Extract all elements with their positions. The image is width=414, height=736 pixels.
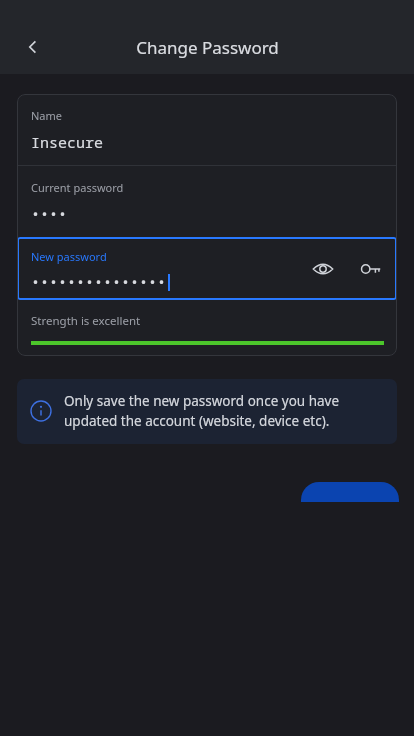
button[interactable]: New password [17, 237, 397, 300]
button[interactable]: Name [17, 94, 397, 165]
button[interactable]: Back [14, 28, 52, 66]
staticText: ••••••••••••••• [31, 272, 167, 292]
staticText: •••• [31, 204, 68, 224]
staticText: Only save the new password once you have… [64, 392, 340, 430]
staticText: Change Password [136, 36, 279, 59]
staticText: New password [31, 249, 107, 264]
button[interactable]: Current password [17, 166, 397, 237]
staticText: Name [31, 108, 63, 123]
staticText: Current password [31, 180, 124, 195]
staticText: Strength is excellent [31, 313, 141, 329]
button[interactable]: Show password [305, 251, 341, 287]
button[interactable]: Only save the new password once you have… [17, 379, 397, 444]
button[interactable]: Save [301, 482, 399, 502]
staticText: Insecure [31, 132, 104, 152]
button[interactable]: Generate password [353, 251, 389, 287]
